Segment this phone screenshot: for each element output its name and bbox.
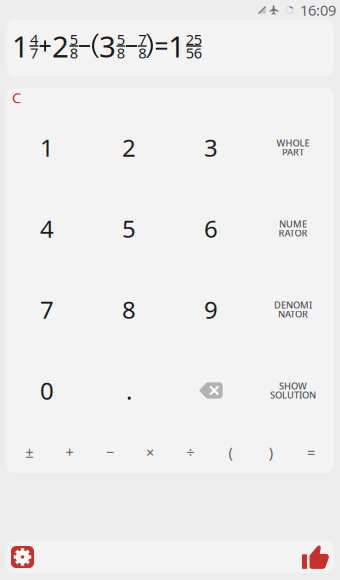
button[interactable]: Backspace [170,350,252,431]
staticText: 5 [70,30,78,49]
button[interactable]: 1 [6,107,88,188]
staticText: NUME [279,218,307,230]
staticText: 7 [138,30,146,49]
staticText: 1 [40,132,54,163]
staticText: RATOR [278,227,307,239]
button[interactable]: . [88,350,170,431]
staticText: ) [269,442,273,462]
staticText: 4 [40,213,54,244]
staticText: SHOW [279,380,307,392]
staticText: = [307,442,315,462]
staticText: + [65,442,73,462]
staticText: 2 [122,132,136,163]
button[interactable]: DENOMI [252,269,334,350]
staticText: 6 [204,213,218,244]
staticText: C [12,88,21,107]
staticText: − [106,442,114,462]
staticText: 8 [117,43,125,62]
staticText: 5 [122,213,136,244]
staticText: PART [282,146,304,158]
staticText: WHOLE [276,137,309,149]
staticText: 7 [40,294,54,325]
button[interactable]: 3 [170,107,252,188]
button[interactable]: 5 [88,188,170,269]
staticText: 9 [204,294,218,325]
staticText: ± [25,442,33,462]
button[interactable]: C [6,88,27,107]
button[interactable]: 0 [6,350,88,431]
staticText: 2 [52,26,69,65]
button[interactable]: = [291,431,331,473]
staticText: 25 [186,30,202,49]
staticText: NATOR [278,308,308,320]
button[interactable]: 4 [6,188,88,269]
staticText: 1 [168,26,185,65]
button[interactable]: − [89,431,130,473]
button[interactable]: 2 [88,107,170,188]
staticText: SOLUTION [270,389,316,401]
button[interactable]: Rate this app [302,544,329,569]
button[interactable]: 6 [170,188,252,269]
button[interactable]: SHOW [252,350,334,431]
staticText: 7 [30,43,38,62]
button[interactable]: 7 [6,269,88,350]
staticText: 8 [122,294,136,325]
staticText: 8 [138,43,146,62]
button[interactable]: × [130,431,170,473]
staticText: 16:09 [300,0,336,20]
button[interactable]: Settings [11,546,34,568]
staticText: 3 [204,132,218,163]
button[interactable]: 9 [170,269,252,350]
staticText: 4 [30,30,38,49]
staticText: 56 [186,43,202,62]
button[interactable]: + [49,431,89,473]
staticText: 1 [12,26,29,65]
button[interactable]: ± [9,431,49,473]
button[interactable]: NUME [252,188,334,269]
staticText: ( [228,442,232,462]
staticText: 0 [40,375,54,406]
staticText: . [126,375,132,406]
button[interactable]: 8 [88,269,170,350]
button[interactable]: WHOLE [252,107,334,188]
staticText: 3 [99,26,116,65]
button[interactable]: ) [250,431,291,473]
staticText: 8 [70,43,78,62]
staticText: ÷ [186,442,194,462]
staticText: × [146,442,154,462]
button[interactable]: ÷ [170,431,210,473]
staticText: 5 [117,30,125,49]
staticText: DENOMI [274,299,312,311]
button[interactable]: ( [210,431,250,473]
